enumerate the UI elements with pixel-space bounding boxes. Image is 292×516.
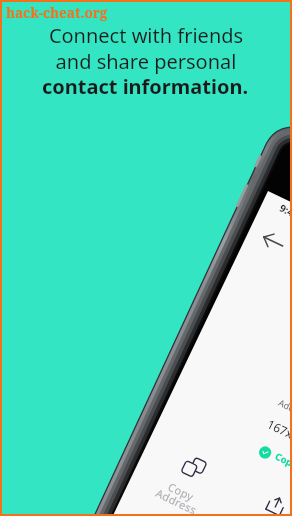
staticText: Connect with friends and share personal: [0, 22, 292, 75]
button[interactable]: Share: [262, 490, 291, 516]
staticText: Copy Address: [150, 474, 207, 516]
staticText: Copied: [273, 450, 292, 476]
staticText: Address: [277, 396, 292, 422]
button[interactable]: Copy Address: [150, 442, 224, 516]
staticText: contact information.: [0, 73, 291, 100]
button[interactable]: Back: [253, 225, 291, 257]
staticText: 9:41: [277, 201, 292, 222]
staticText: 167xQ2dR: [265, 415, 292, 455]
staticText: hack-cheat.org: [6, 4, 108, 22]
